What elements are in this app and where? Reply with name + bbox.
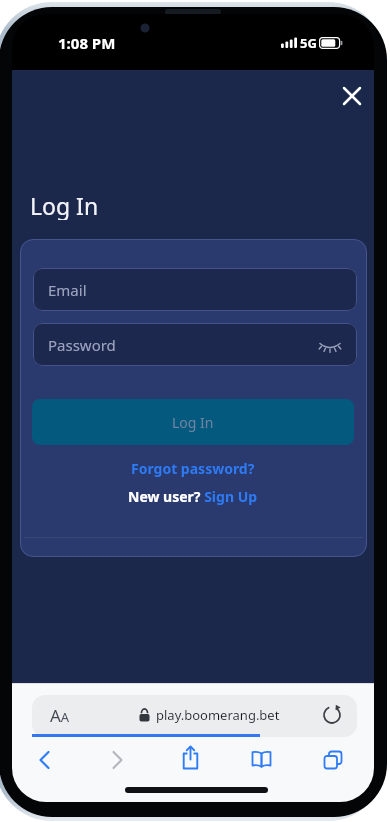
staticText: Log In <box>30 190 99 220</box>
staticText: 5G <box>300 34 317 52</box>
staticText: 1:08 PM <box>58 33 116 53</box>
button[interactable] <box>318 334 342 358</box>
staticText: New user? Sign Up <box>128 487 258 506</box>
button[interactable] <box>249 749 274 771</box>
button[interactable]: New user? Sign Up <box>93 485 293 507</box>
staticText: Log In <box>172 413 214 432</box>
staticText: Forgot password? <box>131 459 255 478</box>
button[interactable] <box>32 695 357 737</box>
staticText: play.boomerang.bet <box>156 706 280 724</box>
staticText: Password <box>48 335 116 355</box>
button[interactable]: Forgot password? <box>93 457 293 479</box>
button[interactable] <box>322 749 344 771</box>
button[interactable] <box>106 749 128 771</box>
button[interactable] <box>178 745 203 771</box>
button[interactable] <box>321 704 343 726</box>
button[interactable] <box>34 749 56 771</box>
button[interactable]: Email <box>33 268 357 311</box>
button[interactable]: Log In <box>32 399 354 445</box>
button[interactable]: Password <box>33 323 357 366</box>
button[interactable]: AA <box>46 704 74 726</box>
staticText: Email <box>48 280 87 300</box>
staticText: AA <box>50 704 70 726</box>
button[interactable] <box>341 85 363 107</box>
